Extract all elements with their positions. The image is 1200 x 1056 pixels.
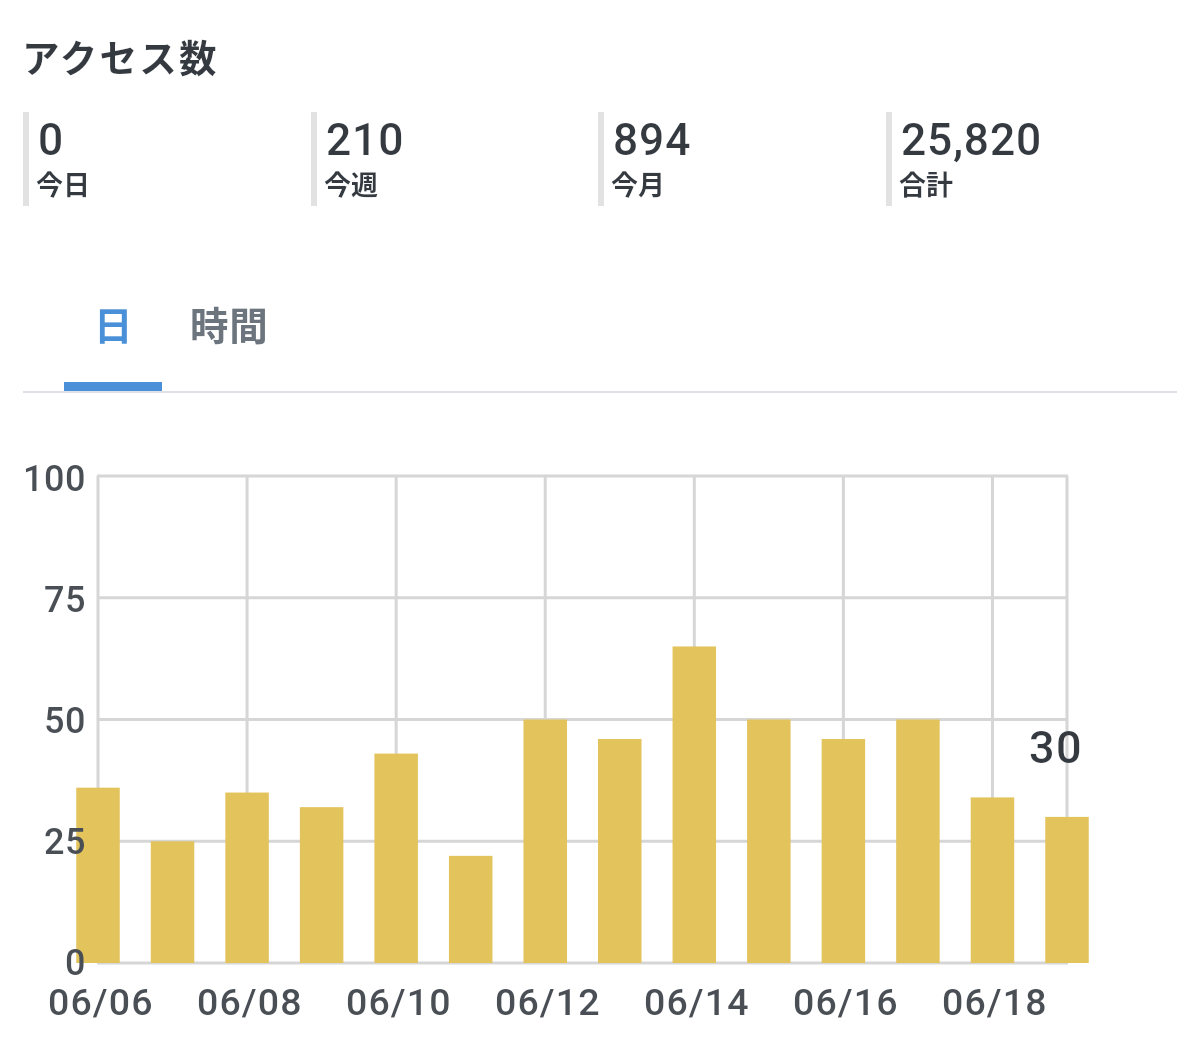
staticText: 894 xyxy=(613,114,692,166)
button[interactable]: 210 xyxy=(311,112,599,206)
staticText: 06/12 xyxy=(495,980,601,1024)
staticText: 時間 xyxy=(190,295,269,351)
button[interactable]: 894 xyxy=(598,112,886,206)
staticText: 210 xyxy=(326,114,405,166)
staticText: 100 xyxy=(23,458,87,500)
staticText: 06/10 xyxy=(346,980,452,1024)
staticText: 今週 xyxy=(324,164,378,203)
staticText: アクセス数 xyxy=(22,28,219,82)
button[interactable]: 時間 xyxy=(162,295,297,382)
staticText: 25,820 xyxy=(901,114,1043,166)
staticText: 合計 xyxy=(899,164,953,203)
staticText: 06/14 xyxy=(644,980,750,1024)
staticText: 50 xyxy=(44,700,87,742)
staticText: 今月 xyxy=(611,164,665,203)
staticText: 25 xyxy=(44,821,87,863)
staticText: 06/16 xyxy=(793,980,899,1024)
staticText: 0 xyxy=(38,114,65,166)
staticText: 今日 xyxy=(36,164,90,203)
staticText: 06/18 xyxy=(942,980,1048,1024)
staticText: 30 xyxy=(1029,721,1083,774)
button[interactable]: 25,820 xyxy=(886,112,1174,206)
staticText: 日 xyxy=(94,295,133,351)
staticText: 06/08 xyxy=(197,980,303,1024)
button[interactable]: 日 xyxy=(64,295,162,382)
staticText: 06/06 xyxy=(48,980,154,1024)
staticText: 0 xyxy=(65,942,87,984)
button[interactable]: 0 xyxy=(23,112,311,206)
staticText: 75 xyxy=(44,579,87,621)
